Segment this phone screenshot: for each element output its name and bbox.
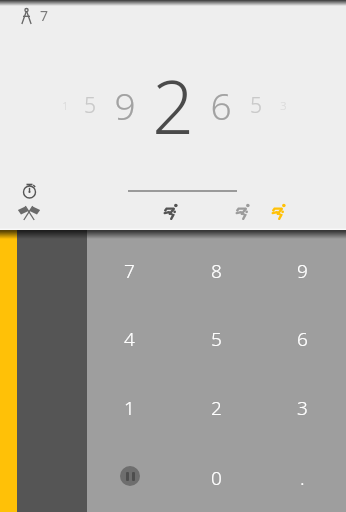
staticText: 1 bbox=[124, 395, 135, 421]
staticText: 9 bbox=[114, 80, 136, 130]
button[interactable]: Sprint mode bbox=[267, 201, 288, 222]
button[interactable]: 0 bbox=[173, 443, 260, 512]
staticText: 3 bbox=[280, 98, 287, 113]
staticText: 3 bbox=[297, 395, 308, 421]
staticText: 1 bbox=[62, 98, 69, 113]
button[interactable]: Run mode bbox=[159, 201, 180, 222]
staticText: 7 bbox=[124, 258, 135, 284]
button[interactable]: Pause bbox=[86, 443, 173, 512]
button[interactable]: 1 bbox=[86, 373, 173, 442]
button[interactable]: 5 bbox=[173, 304, 260, 373]
button[interactable]: 7 bbox=[86, 236, 173, 305]
button[interactable]: Race bbox=[17, 205, 41, 221]
staticText: 0 bbox=[211, 465, 222, 491]
staticText: 5 bbox=[84, 91, 96, 120]
staticText: 9 bbox=[297, 258, 308, 284]
staticText: 5 bbox=[211, 326, 222, 352]
button[interactable]: 3 bbox=[259, 373, 346, 442]
button[interactable]: 6 bbox=[259, 304, 346, 373]
staticText: 7 bbox=[40, 6, 49, 25]
staticText: 6 bbox=[210, 80, 232, 130]
staticText: 2 bbox=[152, 56, 194, 155]
staticText: 4 bbox=[124, 326, 135, 352]
button[interactable]: 8 bbox=[173, 236, 260, 305]
staticText: 5 bbox=[250, 91, 262, 120]
button[interactable]: 4 bbox=[86, 304, 173, 373]
staticText: 8 bbox=[211, 258, 222, 284]
staticText: 6 bbox=[297, 326, 308, 352]
button[interactable]: 9 bbox=[259, 236, 346, 305]
staticText: 2 bbox=[211, 395, 222, 421]
button[interactable]: Distance bbox=[21, 6, 49, 25]
button[interactable]: Stopwatch bbox=[19, 180, 39, 200]
button[interactable]: 2 bbox=[173, 373, 260, 442]
button[interactable]: Walk mode bbox=[231, 201, 252, 222]
staticText: . bbox=[300, 465, 305, 491]
